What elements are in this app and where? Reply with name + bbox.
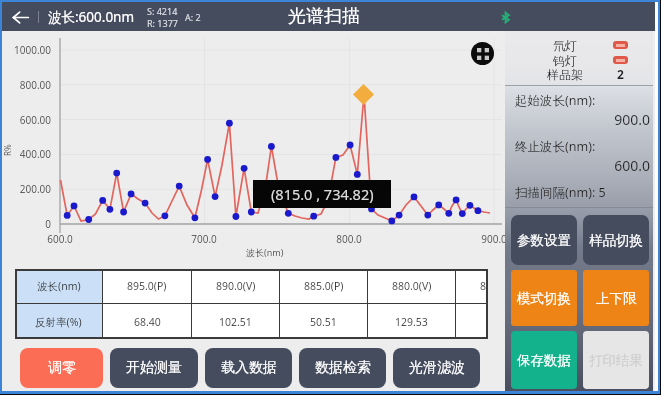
staticText: 900.0: [515, 110, 650, 129]
button[interactable]: 样品切换: [583, 215, 649, 265]
staticText: 700.0: [185, 232, 223, 246]
button[interactable]: 保存数据: [511, 331, 577, 389]
staticText: 模式切换: [517, 290, 571, 307]
button[interactable]: Back: [8, 5, 32, 29]
staticText: 880.0(V): [392, 279, 432, 293]
staticText: 8: [480, 279, 487, 293]
staticText: R: 1377: [147, 17, 178, 29]
staticText: S: 4214: [147, 5, 178, 17]
staticText: 扫描间隔(nm): 5: [515, 184, 606, 201]
staticText: 68.40: [134, 315, 161, 329]
staticText: 调零: [48, 359, 76, 377]
staticText: 600.00: [0, 113, 51, 127]
staticText: 起始波长(nm):: [515, 92, 596, 109]
staticText: 光谱扫描: [288, 5, 360, 28]
staticText: 102.51: [219, 315, 252, 329]
button[interactable]: 数据检索: [299, 348, 386, 388]
button[interactable]: 打印结果: [583, 331, 649, 389]
staticText: 波长:600.0nm: [48, 8, 135, 26]
staticText: (815.0 , 734.82): [271, 184, 374, 204]
button[interactable]: 开始测量: [110, 348, 198, 388]
staticText: 氘灯: [553, 38, 577, 52]
staticText: 1000.00: [0, 43, 51, 57]
staticText: 终止波长(nm):: [515, 138, 596, 155]
staticText: 光滑滤波: [409, 359, 465, 377]
staticText: 波长(nm): [37, 279, 81, 293]
button[interactable]: 调零: [20, 348, 103, 388]
button[interactable]: 光滑滤波: [393, 348, 480, 388]
staticText: 反射率(%): [35, 315, 82, 329]
staticText: 打印结果: [589, 352, 643, 369]
staticText: 600.0: [515, 156, 650, 175]
button[interactable]: Bluetooth: [494, 6, 516, 28]
staticText: 129.53: [395, 315, 428, 329]
staticText: 样品架: [547, 67, 583, 82]
staticText: 开始测量: [126, 359, 182, 377]
staticText: 900.0: [475, 232, 513, 246]
staticText: 保存数据: [517, 352, 571, 369]
staticText: 600.0: [41, 232, 79, 246]
staticText: 200.00: [0, 182, 51, 196]
staticText: 波长(nm): [246, 246, 284, 258]
staticText: 50.51: [310, 315, 337, 329]
staticText: 890.0(V): [216, 279, 256, 293]
staticText: 800.0: [330, 232, 368, 246]
staticText: 上下限: [596, 290, 637, 307]
staticText: 钨灯: [553, 53, 577, 67]
staticText: 0: [0, 217, 51, 231]
staticText: 885.0(P): [304, 279, 344, 293]
staticText: 数据检索: [315, 359, 371, 377]
button[interactable]: 上下限: [583, 270, 649, 326]
staticText: 参数设置: [517, 232, 571, 249]
staticText: A: 2: [185, 11, 201, 23]
staticText: R%: [2, 144, 13, 156]
staticText: 样品切换: [589, 232, 643, 249]
button[interactable]: 模式切换: [511, 270, 577, 326]
button[interactable]: Grid view: [471, 42, 494, 65]
staticText: 400.00: [0, 147, 51, 161]
button[interactable]: 参数设置: [511, 215, 577, 265]
staticText: 895.0(P): [127, 279, 167, 293]
button[interactable]: 载入数据: [205, 348, 292, 388]
staticText: 载入数据: [221, 359, 277, 377]
staticText: 800.00: [0, 78, 51, 92]
staticText: 2: [617, 66, 624, 82]
